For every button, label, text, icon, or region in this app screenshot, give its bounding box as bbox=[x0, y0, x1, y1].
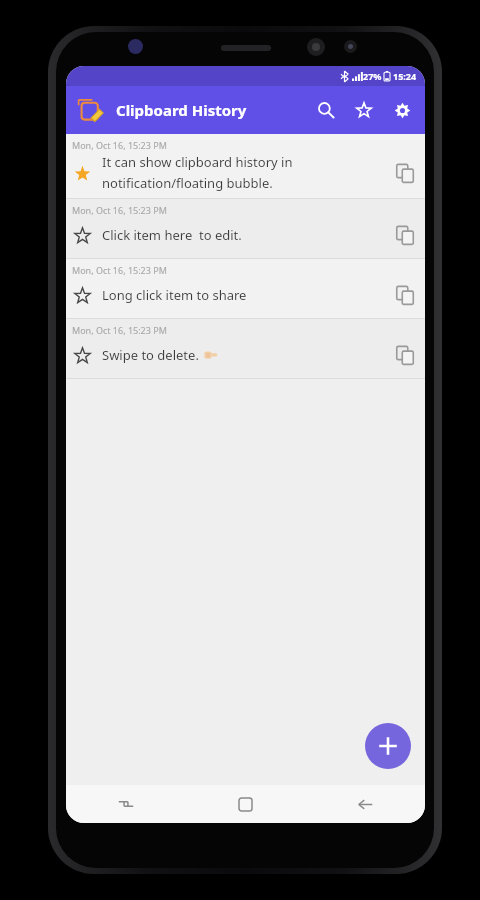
button[interactable]: Copy bbox=[388, 338, 422, 372]
button[interactable]: App icon bbox=[72, 92, 108, 128]
button[interactable]: Add clipboard item bbox=[365, 723, 411, 769]
staticText: Click item here to edit. bbox=[102, 226, 242, 244]
button[interactable]: Copy bbox=[388, 278, 422, 312]
button[interactable]: Star item bbox=[66, 279, 98, 311]
button[interactable]: Mon, Oct 16, 15:23 PM bbox=[66, 259, 425, 318]
button[interactable]: Copy bbox=[388, 156, 422, 190]
button[interactable]: Favorites bbox=[345, 91, 383, 129]
staticText: Mon, Oct 16, 15:23 PM bbox=[72, 139, 167, 151]
button[interactable]: Star item bbox=[66, 219, 98, 251]
button[interactable]: Copy bbox=[388, 218, 422, 252]
button[interactable]: Back bbox=[305, 785, 425, 823]
button[interactable]: Star item bbox=[66, 339, 98, 371]
staticText: 27% bbox=[363, 70, 382, 82]
staticText: Mon, Oct 16, 15:23 PM bbox=[72, 204, 167, 216]
button[interactable]: Mon, Oct 16, 15:23 PM bbox=[66, 199, 425, 258]
staticText: notification/floating bubble. bbox=[102, 174, 273, 192]
button[interactable]: Unstar item bbox=[66, 157, 98, 189]
staticText: It can show clipboard history in bbox=[102, 153, 293, 171]
button[interactable]: Mon, Oct 16, 15:23 PM bbox=[66, 319, 425, 378]
staticText: 15:24 bbox=[393, 70, 417, 82]
button[interactable]: Settings bbox=[383, 91, 421, 129]
staticText: Mon, Oct 16, 15:23 PM bbox=[72, 264, 167, 276]
button[interactable]: Home bbox=[185, 785, 305, 823]
staticText: Long click item to share bbox=[102, 286, 247, 304]
staticText: Clipboard History bbox=[116, 100, 247, 120]
button[interactable]: Search bbox=[307, 91, 345, 129]
button[interactable]: Recents bbox=[66, 785, 185, 823]
staticText: Swipe to delete. bbox=[102, 346, 199, 364]
button[interactable]: Mon, Oct 16, 15:23 PM bbox=[66, 134, 425, 198]
staticText: Mon, Oct 16, 15:23 PM bbox=[72, 324, 167, 336]
